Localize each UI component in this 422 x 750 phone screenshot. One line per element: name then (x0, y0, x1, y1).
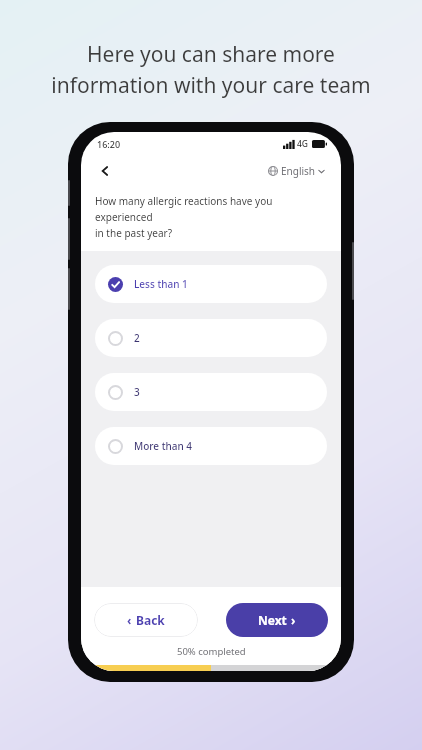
button[interactable]: ‹ (94, 603, 198, 637)
staticText: 3 (134, 385, 140, 399)
staticText: How many allergic reactions have you exp… (95, 194, 329, 239)
staticText: English (281, 164, 316, 178)
button[interactable]: Back (93, 159, 117, 183)
button[interactable]: English (266, 160, 327, 182)
button[interactable]: 2 (95, 319, 327, 357)
staticText: 2 (134, 331, 140, 345)
button[interactable]: Less than 1 (95, 265, 327, 303)
button[interactable]: More than 4 (95, 427, 327, 465)
staticText: Back (136, 612, 165, 628)
staticText: › (291, 612, 296, 628)
staticText: 16:20 (97, 138, 121, 150)
button[interactable]: Next (226, 603, 328, 637)
button[interactable]: 3 (95, 373, 327, 411)
staticText: Next (258, 612, 287, 628)
staticText: 4G (297, 138, 309, 150)
staticText: More than 4 (134, 439, 193, 453)
staticText: 50% completed (177, 645, 246, 658)
staticText: Less than 1 (134, 277, 188, 291)
staticText: ‹ (127, 612, 132, 628)
staticText: Here you can share more information with… (26, 40, 396, 99)
